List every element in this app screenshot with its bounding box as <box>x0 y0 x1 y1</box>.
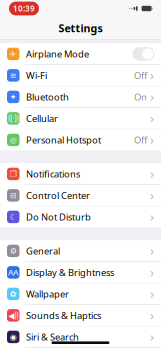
button[interactable]: ☾ <box>0 206 161 227</box>
button[interactable]: ((·)) <box>0 108 161 129</box>
staticText: Off <box>134 69 147 82</box>
staticText: Do Not Disturb <box>26 211 91 223</box>
button[interactable]: AA <box>0 262 161 283</box>
staticText: Sounds & Haptics <box>26 309 101 322</box>
staticText: › <box>150 329 154 345</box>
staticText: ◉ <box>10 332 17 341</box>
staticText: › <box>150 286 154 302</box>
staticText: ✈ <box>10 49 17 58</box>
staticText: Wi-Fi <box>26 69 47 82</box>
staticText: ◀)) <box>8 310 18 321</box>
staticText: › <box>150 67 154 83</box>
staticText: Notifications <box>26 168 80 180</box>
staticText: On <box>134 91 147 103</box>
staticText: ✿ <box>10 289 17 298</box>
staticText: › <box>150 89 154 105</box>
button[interactable]: ◎ <box>0 129 161 150</box>
staticText: Cellular <box>26 112 58 125</box>
button[interactable]: ✿ <box>0 283 161 305</box>
staticText: ≋ <box>10 71 17 80</box>
staticText: AA <box>8 267 18 278</box>
staticText: Off <box>134 134 147 146</box>
button[interactable]: ◀)) <box>0 305 161 326</box>
staticText: Personal Hotspot <box>26 134 101 146</box>
staticText: Bluetooth <box>26 91 69 103</box>
staticText: ⊟ <box>10 191 17 200</box>
staticText: › <box>150 243 154 259</box>
staticText: Wallpaper <box>26 288 69 300</box>
staticText: Settings <box>58 21 102 35</box>
staticText: › <box>150 132 154 148</box>
staticText: ⚙ <box>10 246 17 255</box>
staticText: Airplane Mode <box>26 48 89 60</box>
staticText: › <box>150 187 154 203</box>
staticText: ☾ <box>10 212 17 221</box>
staticText: › <box>150 209 154 225</box>
button[interactable]: ❐ <box>0 163 161 185</box>
staticText: › <box>150 307 154 323</box>
staticText: › <box>150 110 154 126</box>
staticText: 10:39 <box>13 3 35 14</box>
staticText: General <box>26 245 60 257</box>
button[interactable]: ⊟ <box>0 185 161 206</box>
button[interactable]: ⚙ <box>0 240 161 262</box>
staticText: ✦ <box>10 92 17 101</box>
staticText: › <box>150 264 154 280</box>
staticText: ❐ <box>10 169 17 178</box>
button[interactable]: ✈ <box>0 43 161 65</box>
staticText: ◎ <box>10 135 17 144</box>
staticText: Display & Brightness <box>26 266 114 279</box>
staticText: › <box>150 166 154 182</box>
button[interactable]: ◉ <box>0 326 161 348</box>
staticText: Control Center <box>26 189 90 202</box>
staticText: ((·)) <box>8 113 18 124</box>
button[interactable]: ≋ <box>0 65 161 86</box>
staticText: Siri & Search <box>26 331 79 343</box>
button[interactable]: ✦ <box>0 86 161 108</box>
